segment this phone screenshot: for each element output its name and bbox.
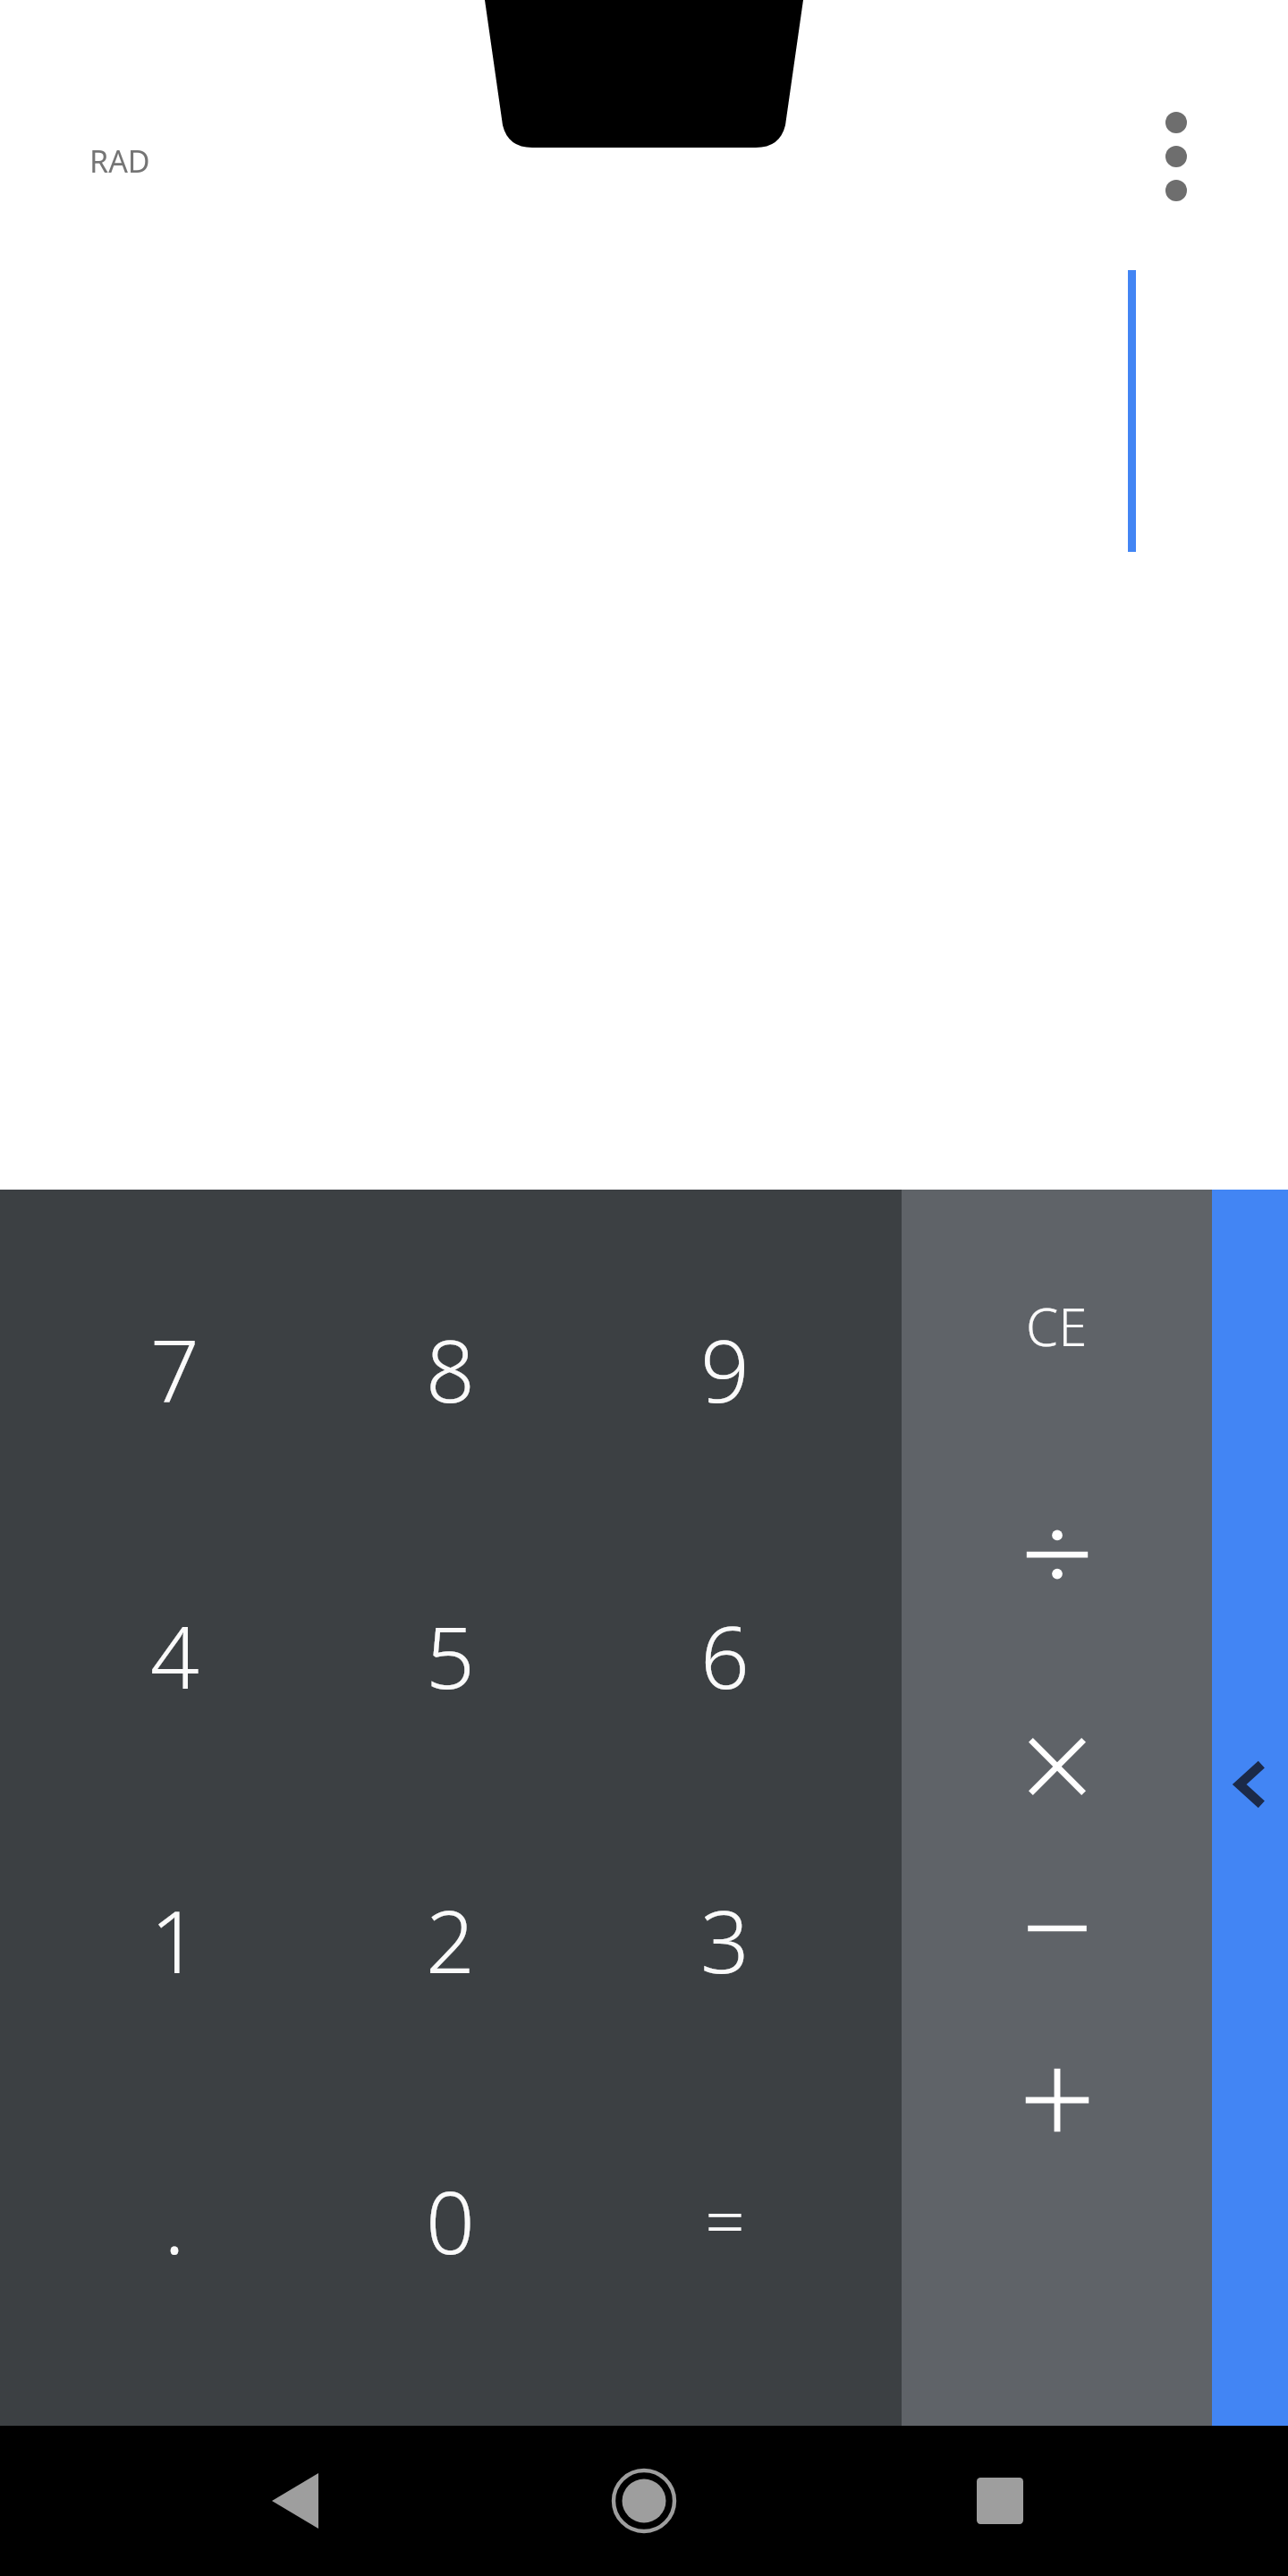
staticText: 7 [150,1310,199,1428]
staticText: CE [1026,1291,1088,1361]
staticText: = [705,2173,745,2267]
staticText: 0 [426,2162,475,2279]
staticText: 3 [700,1881,750,1998]
button[interactable]: 9 [574,1221,875,1516]
button[interactable]: 4 [24,1507,325,1802]
staticText: RAD [89,140,150,182]
staticText: 6 [700,1597,750,1714]
button[interactable]: Multiply [902,1668,1212,1865]
staticText: 4 [150,1597,199,1714]
button[interactable]: Back [224,2426,367,2576]
button[interactable]: 8 [300,1221,600,1516]
button[interactable]: 7 [24,1221,325,1516]
button[interactable]: . [24,2072,325,2368]
button[interactable]: = [574,2072,875,2368]
button[interactable]: Plus [902,2002,1212,2199]
button[interactable]: RAD [89,125,233,197]
button[interactable]: 3 [574,1792,875,2087]
button[interactable]: 2 [300,1792,600,2087]
button[interactable]: Show advanced pad [1212,1682,1288,1887]
staticText: . [164,2162,185,2279]
button[interactable]: 1 [24,1792,325,2087]
staticText: 9 [700,1310,750,1428]
staticText: 1 [150,1881,199,1998]
staticText: 8 [426,1310,475,1428]
button[interactable]: 0 [300,2072,600,2368]
staticText: 2 [426,1881,475,1998]
button[interactable]: Home [572,2426,716,2576]
button[interactable]: Minus [902,1830,1212,2027]
button[interactable]: More options [1118,98,1234,215]
button[interactable]: CE [902,1212,1212,1440]
button[interactable]: 6 [574,1507,875,1802]
staticText: 5 [426,1597,475,1714]
button[interactable]: 5 [300,1507,600,1802]
button[interactable]: Divide [902,1456,1212,1653]
button[interactable]: Recent apps [928,2426,1072,2576]
